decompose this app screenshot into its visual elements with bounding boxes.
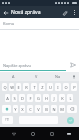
staticText: Na — [55, 74, 61, 79]
button[interactable]: L — [67, 94, 73, 102]
staticText: F — [29, 96, 32, 101]
staticText: O — [64, 85, 68, 90]
staticText: B — [45, 107, 48, 112]
button[interactable]: Back — [8, 128, 19, 139]
staticText: G — [37, 96, 40, 101]
staticText: V — [37, 107, 40, 112]
button[interactable]: More options — [70, 8, 79, 17]
button[interactable]: Recents — [46, 128, 57, 139]
button[interactable]: Na — [47, 72, 69, 81]
button[interactable]: Shift — [2, 105, 11, 113]
button[interactable]: J — [51, 94, 57, 102]
staticText: X — [21, 107, 24, 112]
staticText: D — [21, 96, 24, 101]
button[interactable]: F — [27, 94, 33, 102]
button[interactable]: E — [16, 83, 21, 91]
staticText: Komu — [3, 21, 15, 26]
staticText: R — [25, 85, 28, 90]
button[interactable]: G — [35, 94, 41, 102]
staticText: L — [69, 96, 72, 101]
button[interactable]: Home — [27, 128, 38, 139]
staticText: P — [73, 85, 76, 90]
button[interactable]: H — [43, 94, 49, 102]
staticText: J — [53, 96, 55, 101]
staticText: T — [33, 85, 36, 90]
button[interactable]: O — [63, 83, 69, 91]
button[interactable]: W — [9, 83, 14, 91]
staticText: Napište zprávu — [3, 63, 32, 68]
staticText: U — [49, 85, 52, 90]
staticText: Nová zpráva — [11, 9, 59, 16]
button[interactable]: V — [25, 72, 47, 81]
staticText: K — [61, 96, 64, 101]
button[interactable]: T — [31, 83, 37, 91]
staticText: V — [35, 74, 38, 79]
button[interactable]: S — [12, 94, 17, 102]
staticText: C — [29, 107, 32, 112]
button[interactable]: Backspace — [67, 105, 77, 113]
button[interactable]: A — [5, 94, 10, 102]
button[interactable]: Y — [13, 105, 18, 113]
button[interactable]: C — [27, 105, 33, 113]
staticText: ?1! — [5, 118, 10, 122]
button[interactable]: X — [20, 105, 25, 113]
button[interactable]: Q — [2, 83, 7, 91]
button[interactable]: R — [23, 83, 29, 91]
button[interactable]: D — [19, 94, 25, 102]
staticText: E — [17, 85, 20, 90]
button[interactable]: I — [55, 83, 61, 91]
staticText: H — [45, 96, 48, 101]
button[interactable]: Voice input — [69, 72, 78, 81]
staticText: Q — [3, 85, 7, 90]
button[interactable]: N — [51, 105, 57, 113]
staticText: Z — [41, 85, 44, 90]
staticText: W — [10, 85, 14, 90]
staticText: Y — [14, 107, 17, 112]
staticText: A — [6, 96, 9, 101]
button[interactable]: Komu — [0, 18, 79, 30]
button[interactable]: Hide keyboard — [63, 128, 74, 139]
button[interactable]: B — [43, 105, 49, 113]
button[interactable]: M — [59, 105, 65, 113]
staticText: I — [57, 85, 59, 90]
staticText: M — [60, 107, 64, 112]
button[interactable]: V — [35, 105, 41, 113]
staticText: S — [13, 96, 16, 101]
button[interactable]: K — [59, 94, 65, 102]
staticText: N — [52, 107, 56, 112]
button[interactable]: U — [47, 83, 53, 91]
staticText: A — [12, 74, 15, 79]
button[interactable]: Symbols — [2, 116, 13, 124]
button[interactable]: Back — [0, 7, 11, 18]
button[interactable]: Napište zprávu — [3, 60, 67, 70]
button[interactable]: P — [71, 83, 77, 91]
button[interactable]: Z — [39, 83, 45, 91]
button[interactable]: A — [2, 72, 25, 81]
button[interactable]: Attach — [59, 7, 70, 18]
button[interactable]: Enter — [63, 115, 78, 125]
button[interactable]: Send — [67, 60, 79, 70]
